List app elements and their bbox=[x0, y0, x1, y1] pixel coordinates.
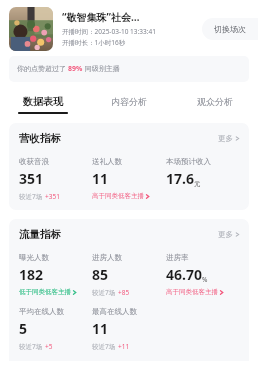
staticText: 高于同类低客主播 bbox=[166, 288, 218, 296]
staticText: +85 bbox=[118, 288, 130, 297]
button[interactable]: 高于同类低客主播 bbox=[92, 192, 150, 200]
staticText: 开播时间：2025-03-10 13:33:41 bbox=[62, 27, 156, 36]
staticText: 较近7场 bbox=[92, 288, 116, 297]
staticText: 351 bbox=[19, 169, 44, 188]
button[interactable]: 更多 bbox=[218, 134, 240, 143]
staticText: “敬智集珠”社会… bbox=[62, 10, 140, 24]
staticText: 5 bbox=[19, 319, 28, 338]
staticText: 元 bbox=[194, 180, 201, 188]
staticText: 17.6 bbox=[166, 169, 194, 188]
staticText: 更多 bbox=[218, 230, 233, 239]
staticText: 更多 bbox=[218, 134, 233, 143]
staticText: 46.70 bbox=[166, 265, 202, 284]
staticText: 内容分析 bbox=[111, 96, 147, 107]
staticText: 曝光人数 bbox=[19, 253, 49, 262]
staticText: 低于同类低客主播 bbox=[19, 288, 71, 296]
staticText: 进房率 bbox=[166, 253, 189, 262]
button[interactable]: 内容分析 bbox=[86, 90, 172, 112]
button[interactable]: 观众分析 bbox=[172, 90, 258, 112]
staticText: 89% bbox=[68, 64, 83, 74]
staticText: 进房人数 bbox=[92, 253, 122, 262]
staticText: 切换场次 bbox=[214, 24, 246, 34]
staticText: 观众分析 bbox=[197, 96, 233, 107]
staticText: 高于同类低客主播 bbox=[92, 192, 144, 200]
staticText: 同级别主播 bbox=[83, 64, 120, 74]
button[interactable]: 你的点赞超过了 bbox=[9, 56, 249, 82]
staticText: 流量指标 bbox=[19, 228, 61, 241]
staticText: 11 bbox=[92, 319, 109, 338]
button[interactable]: 切换场次 bbox=[202, 18, 258, 40]
staticText: 较近7场 bbox=[92, 342, 116, 351]
staticText: +351 bbox=[45, 192, 60, 201]
staticText: 你的点赞超过了 bbox=[17, 64, 68, 74]
staticText: 开播时长：1小时16秒 bbox=[62, 38, 126, 47]
staticText: 较近7场 bbox=[19, 192, 43, 201]
staticText: 11 bbox=[92, 169, 109, 188]
button[interactable]: 更多 bbox=[218, 230, 240, 239]
button[interactable]: 高于同类低客主播 bbox=[166, 288, 224, 296]
staticText: 送礼人数 bbox=[92, 157, 122, 166]
staticText: 营收指标 bbox=[19, 132, 61, 145]
staticText: % bbox=[202, 275, 208, 284]
staticText: 数据表现 bbox=[23, 95, 63, 108]
staticText: 182 bbox=[19, 265, 44, 284]
staticText: 收获音浪 bbox=[19, 157, 49, 166]
staticText: 最高在线人数 bbox=[92, 307, 137, 316]
button[interactable]: 低于同类低客主播 bbox=[19, 288, 77, 296]
staticText: 本场预计收入 bbox=[166, 157, 211, 166]
staticText: +11 bbox=[118, 342, 130, 351]
staticText: 较近7场 bbox=[19, 342, 43, 351]
staticText: +5 bbox=[45, 342, 53, 351]
button[interactable]: 数据表现 bbox=[0, 90, 86, 112]
staticText: 平均在线人数 bbox=[19, 307, 64, 316]
staticText: 85 bbox=[92, 265, 109, 284]
